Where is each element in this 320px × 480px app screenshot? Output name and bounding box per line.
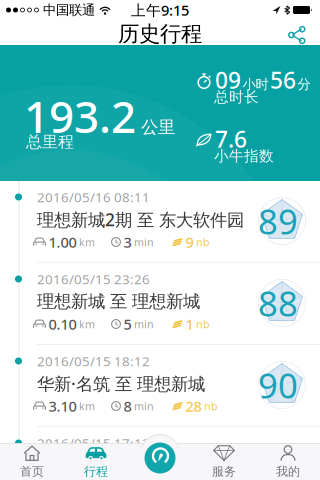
staticText: nb (196, 317, 210, 331)
staticText: 服务 (212, 464, 236, 479)
staticText: 3 (123, 232, 131, 252)
staticText: 89 (258, 198, 298, 244)
staticText: 理想新城2期 至 东大软件园 (37, 208, 244, 231)
staticText: 华新·名筑 至 理想新城 (37, 372, 205, 395)
staticText: 中国联通 (43, 2, 95, 18)
staticText: 3.10 (48, 396, 76, 416)
staticText: 总时长 (214, 88, 259, 106)
staticText: 0.10 (48, 314, 76, 334)
staticText: 历史行程 (118, 21, 202, 47)
staticText: 2016/05/16 08:11 (37, 188, 150, 206)
staticText: 1.00 (48, 232, 76, 252)
staticText: km (79, 235, 95, 249)
staticText: 公里 (141, 117, 175, 138)
button[interactable]: 2016/05/15 23:26 (0, 263, 320, 345)
staticText: km (79, 317, 95, 331)
staticText: 09 (215, 65, 241, 95)
staticText: 90 (258, 362, 298, 408)
staticText: 2016/05/15 23:26 (37, 270, 150, 288)
button[interactable]: 2016/05/15 18:12 (0, 345, 320, 427)
staticText: 首页 (20, 464, 44, 479)
staticText: 上午9:15 (131, 0, 189, 20)
staticText: 行程 (84, 464, 108, 479)
staticText: 193.2 (24, 87, 136, 145)
staticText: 小牛指数 (214, 147, 274, 165)
staticText: min (134, 399, 154, 413)
staticText: 我的 (276, 464, 300, 479)
button[interactable]: 2016/05/15 17:12 (0, 427, 320, 480)
staticText: 28 (185, 396, 201, 416)
button[interactable]: 2016/05/16 08:11 (0, 181, 320, 263)
button[interactable]: 我的 (256, 443, 320, 480)
staticText: km (79, 399, 95, 413)
staticText: 9 (185, 232, 193, 252)
staticText: nb (204, 399, 218, 413)
staticText: nb (196, 235, 210, 249)
button[interactable]: 服务 (192, 443, 256, 480)
staticText: 56 (270, 65, 296, 95)
staticText: 2016/05/15 18:12 (37, 352, 150, 370)
staticText: 5 (123, 314, 131, 334)
staticText: 小时 (242, 76, 268, 93)
staticText: min (134, 317, 154, 331)
button[interactable]: 开始骑行 (136, 425, 184, 475)
staticText: 7.6 (215, 124, 247, 154)
staticText: 2016/05/15 17:12 (37, 434, 150, 452)
button[interactable]: 首页 (0, 443, 64, 480)
button[interactable]: 行程 (64, 443, 128, 480)
staticText: 总里程 (26, 132, 74, 152)
staticText: 88 (258, 280, 298, 326)
staticText: 理想新城 至 理想新城 (37, 291, 200, 312)
staticText: min (134, 235, 154, 249)
button[interactable]: 分享 (288, 26, 306, 44)
staticText: 8 (123, 396, 131, 416)
staticText: 分 (297, 76, 310, 93)
staticText: 1 (185, 314, 193, 334)
